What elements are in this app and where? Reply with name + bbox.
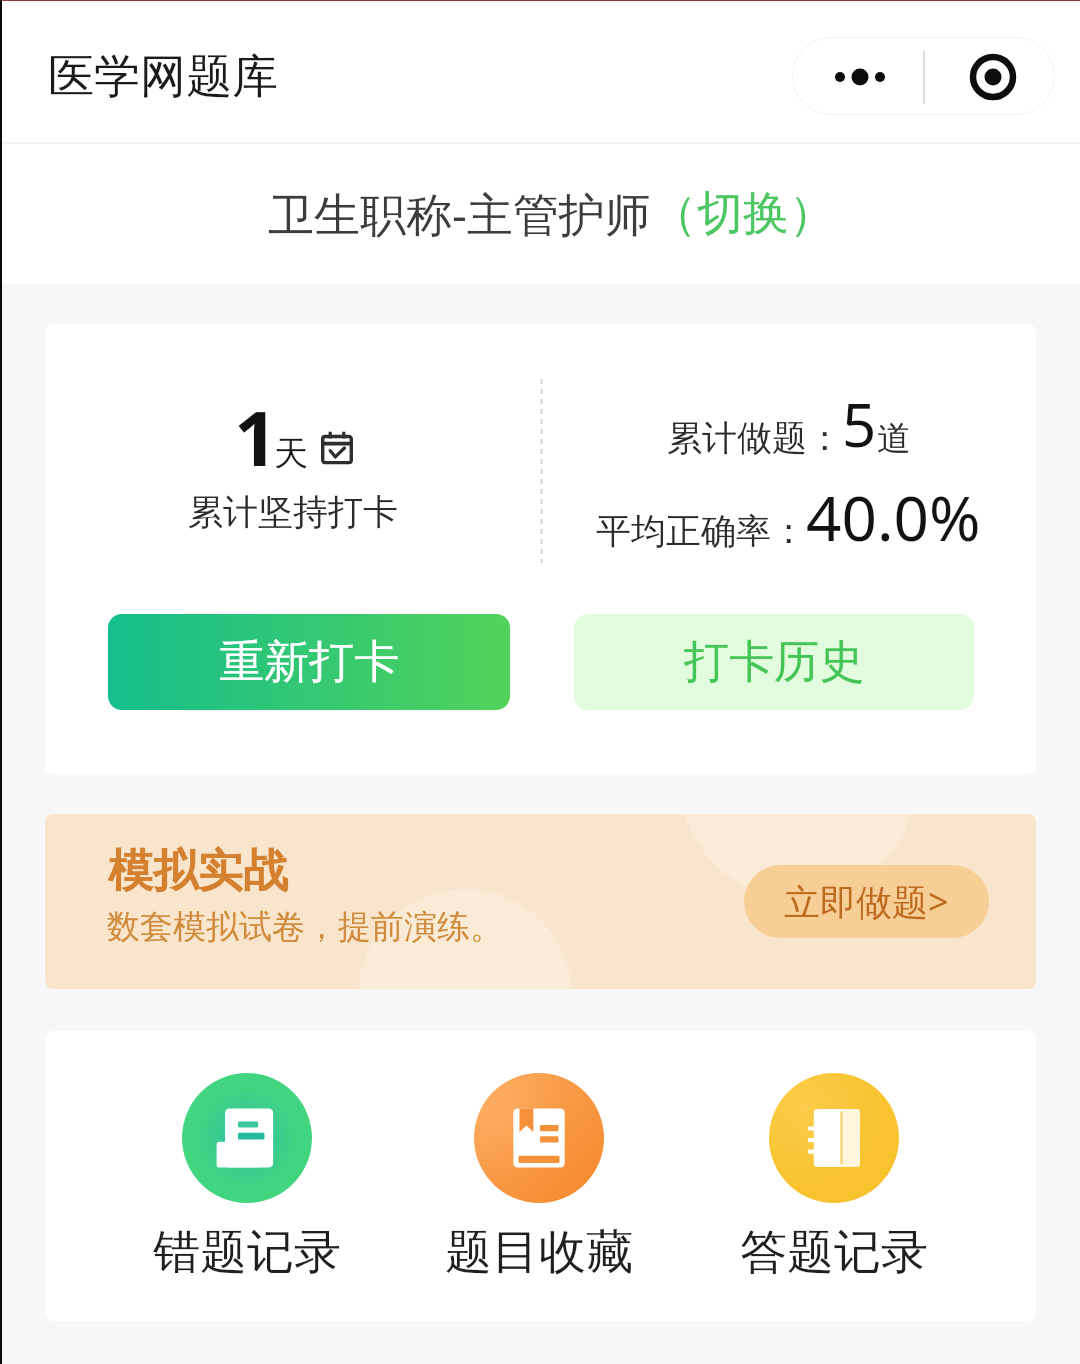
staticText: 医学网题库	[48, 48, 278, 106]
button[interactable]: 错题记录	[147, 1073, 347, 1282]
staticText: 数套模拟试卷，提前演练。	[107, 906, 503, 948]
button[interactable]: Close mini program	[925, 37, 1055, 115]
button[interactable]: 模拟实战	[45, 814, 1036, 989]
staticText: （切换）	[651, 185, 835, 243]
staticText: 重新打卡	[219, 634, 399, 691]
staticText: 累计做题：	[667, 416, 842, 460]
button[interactable]: 打卡历史	[574, 614, 974, 710]
button[interactable]: More options	[792, 37, 925, 115]
button[interactable]: 答题记录	[734, 1073, 934, 1282]
staticText: 40.0%	[806, 475, 981, 559]
staticText: 道	[877, 417, 911, 460]
staticText: 平均正确率：	[596, 509, 806, 553]
button[interactable]: 立即做题>	[744, 865, 989, 938]
staticText: 1	[234, 385, 278, 489]
staticText: 打卡历史	[684, 634, 864, 691]
staticText: 5	[842, 383, 877, 465]
button[interactable]: （切换）	[651, 185, 835, 243]
staticText: 错题记录	[153, 1223, 341, 1282]
staticText: 题目收藏	[445, 1223, 633, 1282]
staticText: 累计坚持打卡	[188, 490, 398, 534]
button[interactable]: 重新打卡	[108, 614, 510, 710]
staticText: 模拟实战	[108, 843, 288, 900]
staticText: 答题记录	[740, 1223, 928, 1282]
staticText: 立即做题>	[784, 877, 949, 926]
button[interactable]: 题目收藏	[439, 1073, 639, 1282]
staticText: 天	[274, 432, 308, 475]
staticText: 卫生职称-主管护师	[268, 182, 651, 245]
